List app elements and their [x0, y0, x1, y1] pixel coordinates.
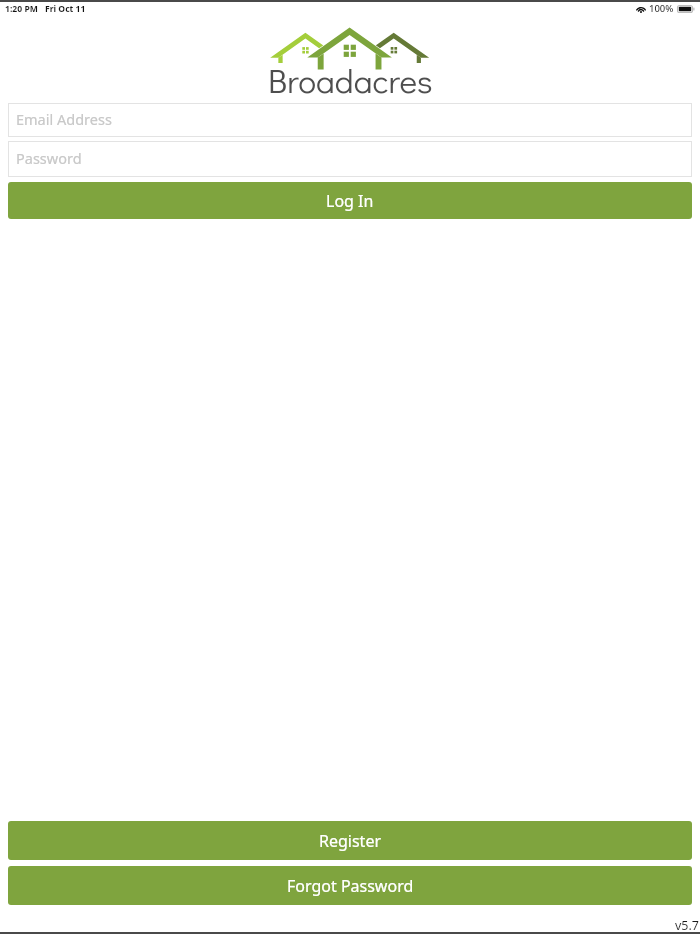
staticText: Register: [319, 830, 382, 852]
staticText: 1:20 PM: [5, 3, 38, 15]
staticText: Broadacres: [268, 58, 433, 102]
other: Broadacres logo: [265, 25, 435, 70]
staticText: Password: [16, 148, 82, 168]
staticText: Fri Oct 11: [45, 3, 86, 15]
staticText: Forgot Password: [287, 875, 414, 897]
staticText: Log In: [326, 190, 374, 212]
button[interactable]: Password: [8, 141, 692, 177]
other: Battery full: [677, 5, 695, 13]
button[interactable]: Log In: [8, 182, 692, 219]
staticText: Email Address: [16, 109, 112, 129]
staticText: 100%: [649, 2, 674, 15]
button[interactable]: Email Address: [8, 103, 692, 137]
other: Wi-Fi connected: [636, 4, 646, 13]
staticText: v5.7: [675, 917, 700, 934]
button[interactable]: Forgot Password: [8, 866, 692, 905]
button[interactable]: Register: [8, 821, 692, 860]
